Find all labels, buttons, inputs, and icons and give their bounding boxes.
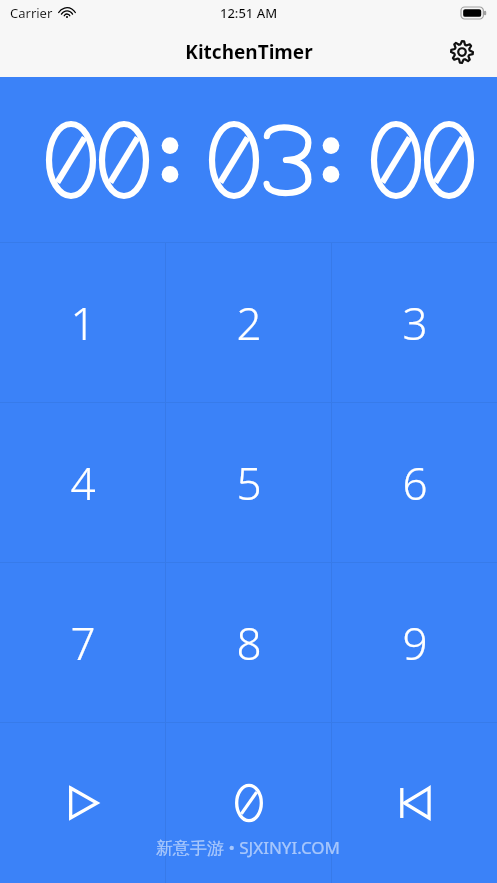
staticText: 12:51 AM	[220, 4, 278, 22]
staticText: 5	[236, 453, 262, 513]
button[interactable]: 0	[166, 723, 331, 883]
button[interactable]: 5	[166, 403, 331, 562]
staticText: 6	[402, 453, 428, 513]
staticText: 新意手游 • SJXINYI.COM	[156, 836, 341, 859]
staticText: KitchenTimer	[185, 39, 313, 65]
button[interactable]: Reset timer	[332, 723, 497, 883]
staticText: 3	[402, 293, 428, 353]
staticText: 8	[236, 613, 262, 673]
button[interactable]: Start timer	[0, 723, 165, 883]
staticText: Carrier	[10, 4, 53, 22]
staticText: 9	[402, 613, 428, 673]
staticText: 1	[70, 293, 96, 353]
button[interactable]: 4	[0, 403, 165, 562]
staticText: 4	[70, 453, 96, 513]
staticText: 2	[236, 293, 262, 353]
button[interactable]: 6	[332, 403, 497, 562]
button[interactable]: Settings	[445, 35, 479, 69]
button[interactable]: 1	[0, 243, 165, 402]
button[interactable]: 8	[166, 563, 331, 722]
button[interactable]: 3	[332, 243, 497, 402]
staticText: 7	[70, 613, 96, 673]
button[interactable]: 2	[166, 243, 331, 402]
button[interactable]: Timer 00:03:00	[0, 77, 497, 242]
button[interactable]: 7	[0, 563, 165, 722]
button[interactable]: 9	[332, 563, 497, 722]
